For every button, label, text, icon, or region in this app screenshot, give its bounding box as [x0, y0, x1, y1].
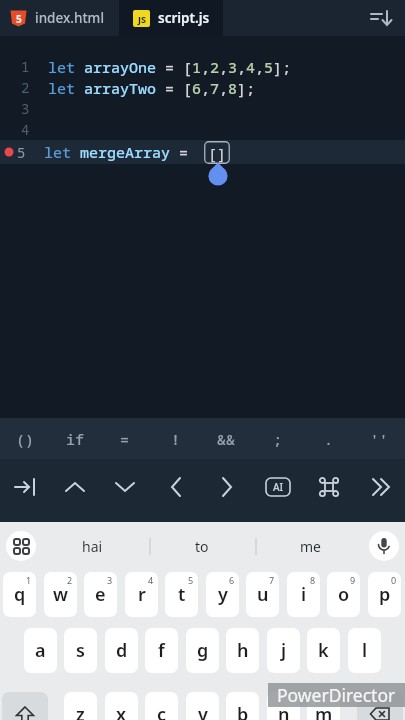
button[interactable]: '' [354, 418, 405, 459]
staticText: u [257, 582, 269, 607]
button[interactable]: r [125, 572, 158, 617]
staticText: 1 [21, 57, 30, 76]
button[interactable]: 5 [0, 0, 119, 36]
button[interactable]: v [186, 692, 219, 720]
button[interactable] [369, 531, 399, 561]
button[interactable] [354, 459, 405, 522]
staticText: b [237, 702, 249, 720]
staticText: 3 [107, 574, 113, 586]
button[interactable] [357, 692, 403, 720]
button[interactable]: && [201, 418, 252, 459]
button[interactable]: ; [252, 418, 303, 459]
staticText: r [138, 582, 146, 607]
staticText: n [278, 702, 290, 720]
button[interactable]: s [64, 628, 97, 673]
staticText: s [76, 638, 85, 663]
staticText: 4 [148, 574, 154, 586]
button[interactable]: me [265, 528, 355, 564]
staticText: 0 [391, 574, 397, 586]
staticText: () [16, 429, 35, 449]
staticText: let arrayOne = [1,2,3,4,5]; [48, 57, 292, 77]
staticText: q [14, 582, 26, 607]
button[interactable]: h [226, 628, 259, 673]
button[interactable]: b [226, 692, 259, 720]
button[interactable]: x [105, 692, 138, 720]
staticText: p [379, 582, 391, 607]
button[interactable] [303, 459, 354, 522]
staticText: 5 [17, 143, 26, 162]
button[interactable] [150, 459, 201, 522]
button[interactable]: l [348, 628, 381, 673]
staticText: 6 [229, 574, 235, 586]
staticText: ! [171, 429, 181, 449]
button[interactable] [50, 459, 100, 522]
staticText: v [198, 702, 208, 720]
staticText: c [157, 702, 167, 720]
button[interactable]: y [206, 572, 239, 617]
staticText: = [120, 429, 130, 449]
button[interactable]: o [327, 572, 360, 617]
button[interactable] [201, 459, 252, 522]
button[interactable] [0, 459, 50, 522]
button[interactable]: = [100, 418, 150, 459]
staticText: 3 [21, 99, 30, 118]
staticText: AI [273, 480, 284, 494]
staticText: t [178, 582, 186, 607]
staticText: && [217, 429, 236, 449]
button[interactable]: if [50, 418, 100, 459]
button[interactable]: . [303, 418, 354, 459]
staticText: d [116, 638, 128, 663]
button[interactable]: e [84, 572, 117, 617]
staticText: 4 [21, 120, 30, 139]
button[interactable]: i [287, 572, 320, 617]
button[interactable]: u [246, 572, 279, 617]
button[interactable]: hai [47, 528, 137, 564]
staticText: 9 [350, 574, 356, 586]
button[interactable]: AI [252, 459, 303, 522]
staticText: JS [138, 13, 146, 25]
button[interactable]: q [3, 572, 36, 617]
staticText: hai [82, 537, 103, 556]
button[interactable]: () [0, 418, 50, 459]
staticText: '' [370, 429, 389, 449]
staticText: e [95, 582, 106, 607]
staticText: 2 [67, 574, 73, 586]
button[interactable]: t [165, 572, 198, 617]
button[interactable]: j [267, 628, 300, 673]
staticText: f [158, 638, 165, 663]
button[interactable]: k [307, 628, 340, 673]
button[interactable]: c [145, 692, 178, 720]
staticText: [] [208, 143, 227, 163]
button[interactable]: z [64, 692, 97, 720]
button[interactable]: to [157, 528, 247, 564]
button[interactable] [363, 0, 399, 36]
staticText: l [362, 638, 368, 663]
button[interactable]: n [267, 692, 300, 720]
staticText: y [218, 582, 228, 607]
button[interactable]: p [368, 572, 401, 617]
staticText: 5 [188, 574, 194, 586]
staticText: if [66, 429, 85, 449]
staticText: let mergeArray = [44, 142, 198, 162]
staticText: h [237, 638, 249, 663]
button[interactable]: m [307, 692, 340, 720]
button[interactable]: a [24, 628, 57, 673]
button[interactable] [6, 531, 36, 561]
button[interactable]: w [44, 572, 77, 617]
staticText: g [197, 638, 209, 663]
staticText: a [35, 638, 46, 663]
button[interactable]: f [145, 628, 178, 673]
staticText: . [324, 429, 334, 449]
staticText: index.html [35, 9, 105, 27]
button[interactable]: ! [150, 418, 201, 459]
button[interactable]: d [105, 628, 138, 673]
button[interactable]: JS [119, 0, 223, 36]
staticText: o [338, 582, 350, 607]
button[interactable] [100, 459, 150, 522]
staticText: 2 [21, 78, 30, 97]
button[interactable] [2, 692, 48, 720]
staticText: z [76, 702, 85, 720]
button[interactable]: g [186, 628, 219, 673]
staticText: j [281, 638, 287, 663]
staticText: m [315, 702, 333, 720]
